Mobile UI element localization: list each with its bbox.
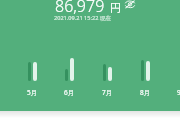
button[interactable]: 8月 <box>136 88 155 97</box>
button[interactable]: 6月 <box>60 88 79 97</box>
staticText: 5月 <box>27 88 38 97</box>
staticText: 8月 <box>140 88 151 97</box>
staticText: 2021.09.21 15:22 現在 <box>54 14 111 22</box>
staticText: 86,979 <box>55 0 105 17</box>
button[interactable]: Hide balance <box>125 0 135 9</box>
button[interactable]: 7月 <box>98 88 117 97</box>
button[interactable]: 5月 <box>23 88 42 97</box>
button[interactable]: 9月 <box>173 88 180 97</box>
staticText: 7月 <box>102 88 113 97</box>
staticText: 9月 <box>177 88 180 97</box>
staticText: 円 <box>110 1 121 15</box>
staticText: 6月 <box>64 88 75 97</box>
